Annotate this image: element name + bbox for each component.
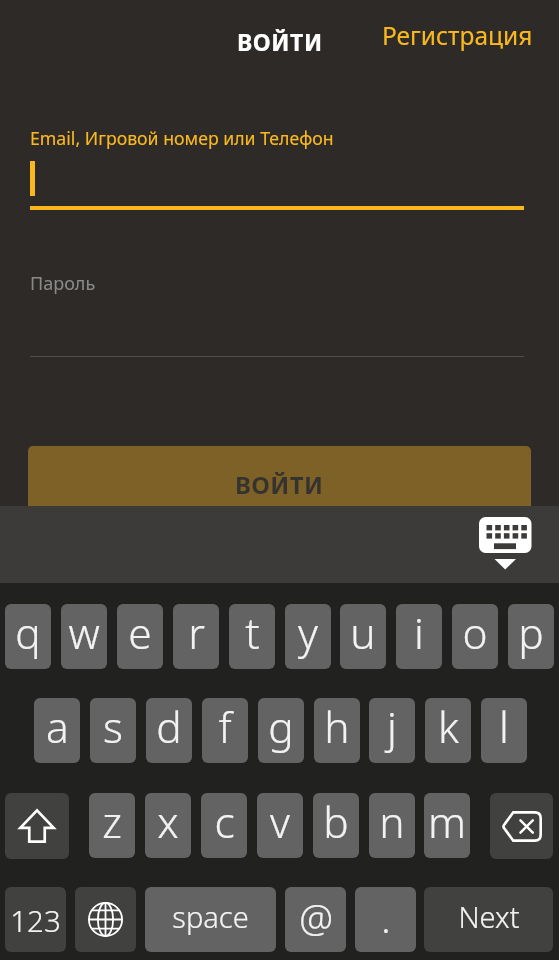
- button[interactable]: q: [5, 604, 51, 669]
- button[interactable]: o: [452, 604, 498, 669]
- button[interactable]: @: [285, 887, 346, 952]
- staticText: ВОЙТИ: [235, 468, 324, 501]
- button[interactable]: Email, Игровой номер или Телефон: [30, 120, 524, 210]
- staticText: g: [268, 698, 294, 756]
- button[interactable]: y: [285, 604, 331, 669]
- button[interactable]: .: [355, 887, 416, 952]
- button[interactable]: k: [425, 698, 471, 763]
- button[interactable]: v: [257, 793, 303, 858]
- button[interactable]: Backspace: [490, 793, 553, 859]
- staticText: n: [379, 793, 405, 851]
- staticText: z: [102, 793, 122, 851]
- button[interactable]: x: [145, 793, 191, 858]
- staticText: e: [128, 604, 152, 662]
- staticText: h: [324, 698, 350, 756]
- staticText: d: [156, 698, 182, 756]
- button[interactable]: b: [313, 793, 359, 858]
- button[interactable]: j: [369, 698, 415, 763]
- staticText: v: [270, 793, 290, 851]
- staticText: t: [245, 604, 260, 662]
- staticText: Пароль: [30, 271, 96, 296]
- staticText: o: [462, 604, 488, 662]
- staticText: s: [103, 698, 123, 756]
- staticText: .: [381, 892, 391, 944]
- staticText: Next: [458, 897, 520, 936]
- staticText: Регистрация: [382, 19, 533, 52]
- button[interactable]: space: [145, 887, 276, 952]
- button[interactable]: s: [90, 698, 136, 763]
- staticText: i: [414, 604, 424, 662]
- button[interactable]: Shift: [5, 793, 69, 859]
- button[interactable]: t: [229, 604, 275, 669]
- staticText: Email, Игровой номер или Телефон: [30, 126, 334, 150]
- button[interactable]: Next: [424, 887, 553, 952]
- button[interactable]: 123: [5, 887, 66, 952]
- staticText: k: [438, 698, 459, 756]
- button[interactable]: c: [201, 793, 247, 858]
- button[interactable]: ВОЙТИ: [228, 6, 332, 74]
- staticText: l: [499, 698, 509, 756]
- staticText: u: [350, 604, 376, 662]
- staticText: q: [15, 604, 41, 662]
- button[interactable]: m: [424, 793, 470, 858]
- button[interactable]: i: [396, 604, 442, 669]
- staticText: space: [172, 897, 249, 936]
- button[interactable]: Регистрация: [372, 2, 542, 70]
- staticText: p: [518, 604, 544, 662]
- staticText: a: [46, 698, 69, 756]
- staticText: 123: [10, 900, 61, 940]
- button[interactable]: l: [481, 698, 527, 763]
- staticText: c: [214, 793, 235, 851]
- button[interactable]: ВОЙТИ: [28, 446, 531, 522]
- staticText: j: [387, 698, 397, 756]
- staticText: m: [428, 793, 466, 851]
- button[interactable]: e: [117, 604, 163, 669]
- button[interactable]: f: [202, 698, 248, 763]
- button[interactable]: d: [146, 698, 192, 763]
- button[interactable]: z: [89, 793, 135, 858]
- staticText: ВОЙТИ: [237, 26, 323, 57]
- staticText: w: [68, 604, 100, 662]
- button[interactable]: w: [61, 604, 107, 669]
- staticText: @: [299, 892, 333, 944]
- staticText: f: [218, 698, 232, 756]
- button[interactable]: h: [314, 698, 360, 763]
- button[interactable]: Пароль: [30, 272, 524, 357]
- staticText: x: [157, 793, 179, 851]
- button[interactable]: Hide keyboard: [471, 511, 539, 577]
- staticText: r: [188, 604, 205, 662]
- button[interactable]: u: [340, 604, 386, 669]
- button[interactable]: Change language: [75, 887, 136, 952]
- button[interactable]: n: [369, 793, 415, 858]
- button[interactable]: p: [508, 604, 554, 669]
- button[interactable]: a: [34, 698, 80, 763]
- button[interactable]: r: [173, 604, 219, 669]
- button[interactable]: g: [258, 698, 304, 763]
- staticText: y: [298, 604, 318, 662]
- staticText: b: [323, 793, 349, 851]
